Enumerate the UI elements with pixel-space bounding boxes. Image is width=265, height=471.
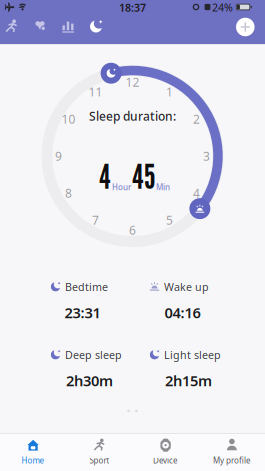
staticText: 9 bbox=[55, 148, 62, 164]
button[interactable] bbox=[84, 11, 110, 41]
button[interactable]: Device bbox=[133, 434, 199, 470]
button[interactable]: My profile bbox=[199, 434, 265, 470]
staticText: 2 bbox=[193, 111, 200, 127]
staticText: Home bbox=[22, 455, 45, 466]
staticText: 5 bbox=[166, 212, 173, 228]
button[interactable] bbox=[55, 11, 81, 41]
staticText: 18:37 bbox=[119, 0, 146, 15]
staticText: Sport bbox=[89, 455, 109, 466]
staticText: 1 bbox=[166, 84, 173, 100]
staticText: 11 bbox=[88, 84, 102, 100]
staticText: 8 bbox=[65, 185, 72, 201]
staticText: 4 bbox=[193, 185, 200, 201]
staticText: 10 bbox=[61, 111, 75, 127]
staticText: 45 bbox=[132, 156, 155, 196]
button[interactable] bbox=[0, 11, 24, 41]
staticText: 2h15m bbox=[165, 371, 212, 390]
staticText: 4 bbox=[99, 156, 111, 196]
staticText: Hour bbox=[112, 182, 131, 192]
button[interactable] bbox=[27, 11, 53, 41]
staticText: 7 bbox=[92, 212, 99, 228]
staticText: 04:16 bbox=[164, 303, 200, 322]
staticText: Bedtime bbox=[65, 280, 108, 294]
staticText: Device bbox=[153, 455, 178, 466]
staticText: Wake up bbox=[164, 280, 209, 294]
staticText: 6 bbox=[129, 222, 136, 238]
staticText: Min bbox=[156, 182, 170, 192]
staticText: 2h30m bbox=[66, 371, 113, 390]
staticText: 24% bbox=[212, 0, 233, 14]
staticText: 12 bbox=[125, 74, 139, 90]
button[interactable]: Sport bbox=[66, 434, 132, 470]
staticText: Deep sleep bbox=[65, 348, 122, 362]
button[interactable] bbox=[236, 17, 255, 37]
staticText: 3 bbox=[203, 148, 210, 164]
staticText: Light sleep bbox=[164, 348, 221, 362]
button[interactable]: Home bbox=[0, 434, 66, 470]
staticText: My profile bbox=[213, 455, 251, 466]
staticText: Sleep duration: bbox=[89, 108, 176, 124]
staticText: 23:31 bbox=[64, 303, 100, 322]
